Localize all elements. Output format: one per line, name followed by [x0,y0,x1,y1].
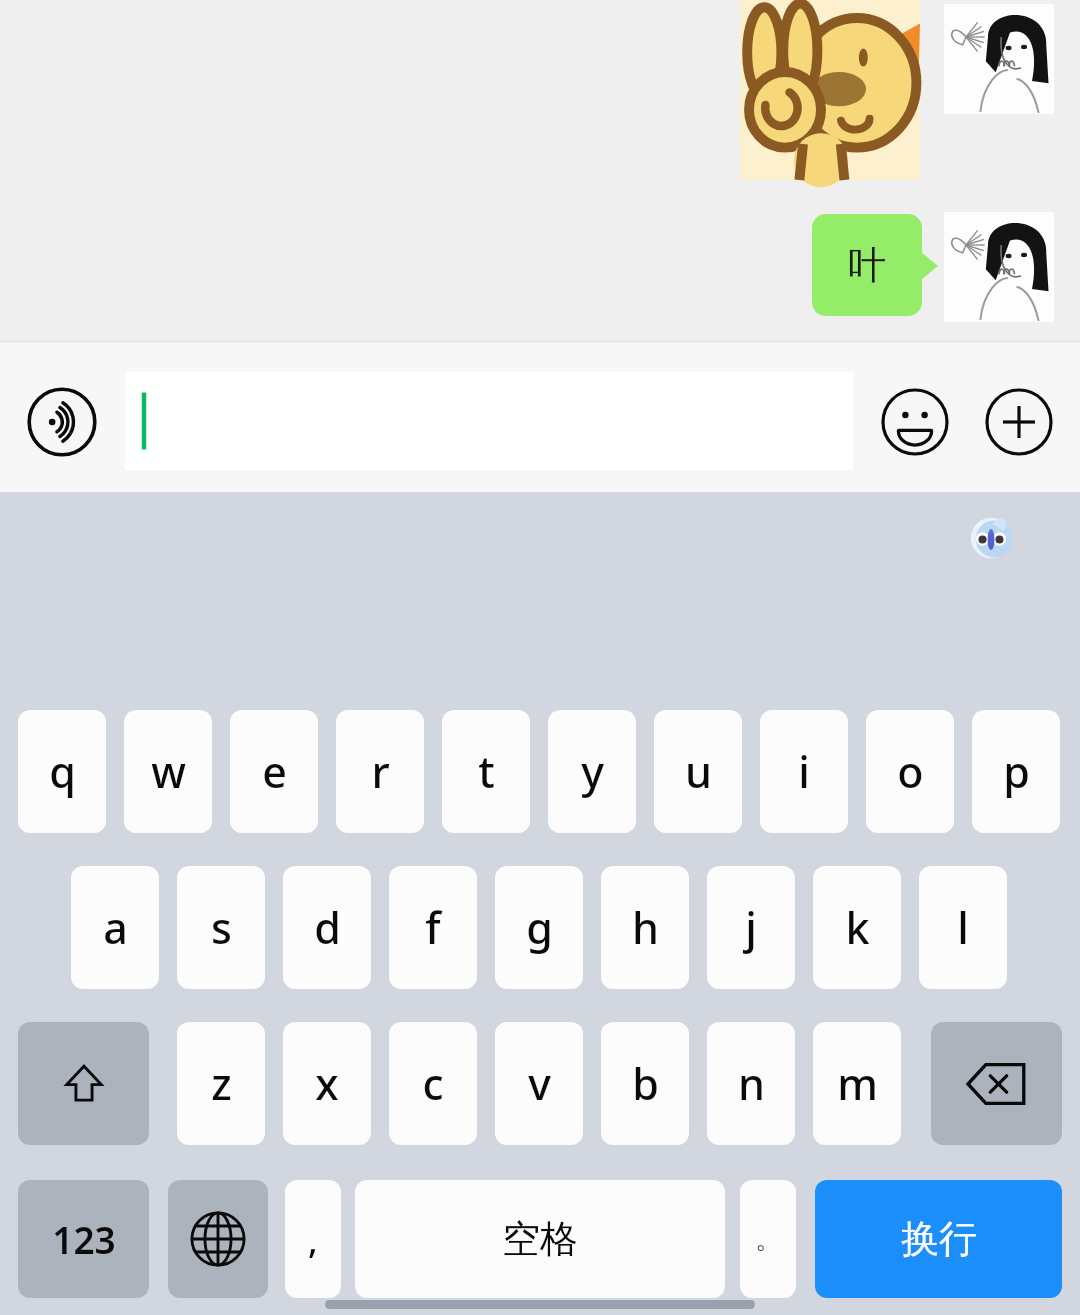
button[interactable]: g [495,866,583,989]
button[interactable]: i [760,710,848,833]
button[interactable]: s [177,866,265,989]
button[interactable]: h [601,866,689,989]
staticText: s [211,898,232,957]
staticText: d [314,898,341,957]
button[interactable]: Backspace [931,1022,1062,1145]
button[interactable]: 空格 [355,1180,725,1298]
staticText: o [897,742,924,801]
button[interactable]: Emoji [875,382,955,462]
button[interactable]: Input method indicator [963,510,1019,566]
button[interactable]: f [389,866,477,989]
staticText: 123 [52,1214,116,1264]
staticText: v [528,1054,551,1113]
button[interactable]: t [442,710,530,833]
staticText: k [845,898,870,957]
staticText: j [745,898,757,957]
button[interactable]: 。 [740,1180,796,1298]
staticText: z [211,1054,232,1113]
staticText: r [371,742,390,801]
button[interactable]: m [813,1022,901,1145]
staticText: x [315,1054,339,1113]
button[interactable]: e [230,710,318,833]
staticText: t [478,742,495,801]
button[interactable]: w [124,710,212,833]
staticText: q [49,742,76,801]
staticText: n [738,1054,765,1113]
button[interactable]: 换行 [815,1180,1062,1298]
button[interactable]: v [495,1022,583,1145]
staticText: y [581,742,604,801]
staticText: w [151,742,186,801]
staticText: a [103,898,128,957]
staticText: i [798,742,810,801]
button[interactable]: a [71,866,159,989]
button[interactable]: d [283,866,371,989]
button[interactable]: b [601,1022,689,1145]
button[interactable]: z [177,1022,265,1145]
button[interactable]: r [336,710,424,833]
button[interactable]: More [979,382,1059,462]
staticText: c [422,1054,444,1113]
button[interactable]: 123 [18,1180,149,1298]
staticText: e [262,742,287,801]
staticText: h [632,898,659,957]
button[interactable]: j [707,866,795,989]
button[interactable]: n [707,1022,795,1145]
button[interactable]: q [18,710,106,833]
staticText: f [425,898,441,957]
staticText: 叶 [848,241,886,289]
button[interactable]: c [389,1022,477,1145]
button[interactable]: Voice input [22,382,102,462]
staticText: b [632,1054,659,1113]
button[interactable]: l [919,866,1007,989]
button[interactable]: Shift [18,1022,149,1145]
staticText: p [1003,742,1030,801]
staticText: l [957,898,969,957]
staticText: u [685,742,712,801]
button[interactable]: k [813,866,901,989]
button[interactable]: x [283,1022,371,1145]
staticText: 空格 [502,1215,578,1263]
button[interactable]: o [866,710,954,833]
staticText: , [308,1215,318,1264]
staticText: 。 [755,1223,781,1256]
button[interactable]: 叶 [812,214,922,316]
button[interactable]: p [972,710,1060,833]
button[interactable]: u [654,710,742,833]
staticText: 换行 [901,1215,977,1263]
staticText: m [837,1054,878,1113]
button[interactable]: , [285,1180,341,1298]
button[interactable]: y [548,710,636,833]
staticText: g [526,898,553,957]
button[interactable]: Switch keyboard [168,1180,268,1298]
button[interactable] [125,372,853,470]
